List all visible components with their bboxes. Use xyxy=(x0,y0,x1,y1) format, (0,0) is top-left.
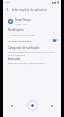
button[interactable]: Voltar xyxy=(3,5,12,14)
staticText: Notificações xyxy=(8,28,24,32)
staticText: Categorias de notificação xyxy=(8,46,40,50)
staticText: Mostrar notificações xyxy=(8,39,32,42)
staticText: Ponto de notificação, tela de bloqueio xyxy=(8,62,44,65)
staticText: ~ 8 notificações por semana xyxy=(8,34,35,37)
staticText: SmartThings xyxy=(15,18,31,22)
button[interactable]: SmartThings xyxy=(3,16,61,27)
staticText: Informações do aplicativo xyxy=(12,8,48,12)
staticText: Avançado xyxy=(8,57,21,61)
staticText: 9:45 xyxy=(5,1,10,4)
staticText: Todas as notificações do app estão ativa… xyxy=(8,51,57,56)
button[interactable]: Recentes xyxy=(48,102,56,110)
staticText: versão 1.7.91 xyxy=(15,23,28,26)
button[interactable]: Voltar xyxy=(8,102,16,110)
button[interactable]: Mostrar notificações xyxy=(3,36,61,44)
button[interactable]: Início xyxy=(27,100,38,111)
